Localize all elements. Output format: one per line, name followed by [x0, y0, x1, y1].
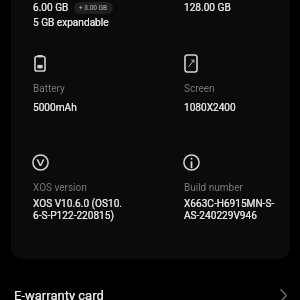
staticText: + 3.00 GB: [79, 4, 108, 12]
button[interactable]: E-warranty card: [0, 272, 300, 300]
staticText: 1080X2400: [184, 102, 236, 114]
staticText: X663C-H6915MN-S- AS-240229V946: [184, 198, 286, 222]
staticText: 5000mAh: [33, 102, 77, 114]
staticText: 5 GB expandable: [33, 17, 109, 29]
staticText: 6.00 GB: [33, 2, 69, 14]
staticText: XOS version: [33, 182, 87, 194]
staticText: XOS V10.6.0 (OS10. 6-S-P122-220815): [33, 198, 143, 222]
staticText: 128.00 GB: [184, 2, 231, 14]
other: Open E-warranty card: [280, 289, 287, 300]
staticText: Battery: [33, 83, 65, 95]
staticText: Screen: [184, 83, 215, 95]
staticText: E-warranty card: [14, 288, 104, 300]
staticText: Build number: [184, 182, 243, 194]
